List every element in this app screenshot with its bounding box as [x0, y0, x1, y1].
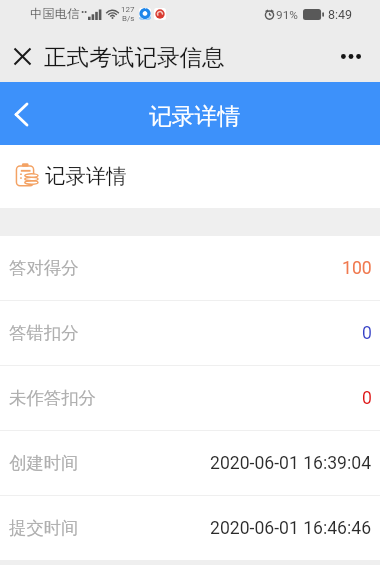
- staticText: B/s: [122, 14, 135, 23]
- button[interactable]: 提交时间: [0, 496, 380, 561]
- staticText: 91%: [276, 8, 298, 22]
- button[interactable]: 创建时间: [0, 431, 380, 496]
- staticText: 未作答扣分: [9, 387, 96, 409]
- staticText: 8:49: [328, 7, 353, 22]
- staticText: 0: [362, 323, 372, 344]
- staticText: 100: [342, 258, 372, 279]
- staticText: 2020-06-01 16:46:46: [210, 518, 372, 539]
- staticText: 创建时间: [9, 452, 79, 474]
- staticText: 提交时间: [9, 517, 79, 539]
- staticText: 记录详情: [45, 163, 127, 189]
- button[interactable]: Back: [1, 94, 41, 134]
- button[interactable]: 未作答扣分: [0, 366, 380, 431]
- staticText: 2020-06-01 16:39:04: [210, 453, 372, 474]
- staticText: 记录详情: [149, 102, 241, 131]
- staticText: 中国电信: [30, 6, 80, 22]
- staticText: 0: [362, 388, 372, 409]
- staticText: 答对得分: [9, 257, 79, 279]
- staticText: 127: [121, 5, 135, 14]
- button[interactable]: 答对得分: [0, 236, 380, 301]
- staticText: 正式考试记录信息: [44, 43, 225, 71]
- staticText: 答错扣分: [9, 322, 79, 344]
- button[interactable]: Close: [4, 37, 40, 73]
- button[interactable]: More options: [333, 37, 369, 73]
- button[interactable]: 答错扣分: [0, 301, 380, 366]
